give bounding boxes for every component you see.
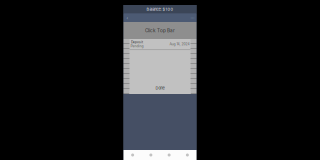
button[interactable]: Click Top Bar (123, 22, 196, 39)
staticText: Aug 14, 2024 (169, 42, 189, 46)
staticText: Pending (130, 44, 143, 48)
staticText: Deposit (131, 40, 143, 44)
staticText: ‹ (126, 15, 128, 20)
staticText: Click Top Bar (145, 28, 175, 33)
button[interactable]: Back (123, 14, 131, 21)
staticText: ⋯ (190, 15, 194, 20)
button[interactable]: Done (155, 85, 164, 91)
button[interactable]: Tab (123, 150, 142, 160)
staticText: Balance: $100 (146, 7, 173, 12)
button[interactable]: Tab (142, 150, 160, 160)
button[interactable]: Tab (160, 150, 178, 160)
staticText: Done (155, 86, 164, 90)
button[interactable]: Tab (178, 150, 196, 160)
